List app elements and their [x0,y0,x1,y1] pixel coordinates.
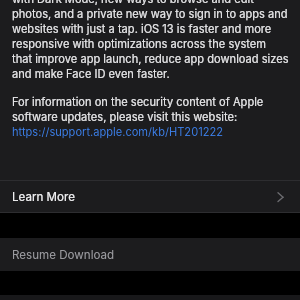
staticText: photos, and a private new way to sign in… [12,7,288,20]
button[interactable]: Learn More [0,181,300,212]
staticText: websites with just a tap. iOS 13 is fast… [12,22,272,35]
button[interactable]: Resume Download [0,238,300,271]
staticText: For information on the security content … [12,95,264,108]
staticText: software updates, please visit this webs… [12,110,238,123]
staticText: Learn More [12,190,75,204]
staticText: that improve app launch, reduce app down… [12,52,289,65]
staticText: Resume Download [12,248,115,262]
staticText: with Dark Mode, new ways to browse and e… [12,0,254,5]
staticText: https://support.apple.com/kb/HT201222 [12,125,223,138]
staticText: responsive with optimizations across the… [12,37,267,50]
other: Learn More [278,191,283,203]
staticText: and make Face ID even faster. [12,67,170,80]
